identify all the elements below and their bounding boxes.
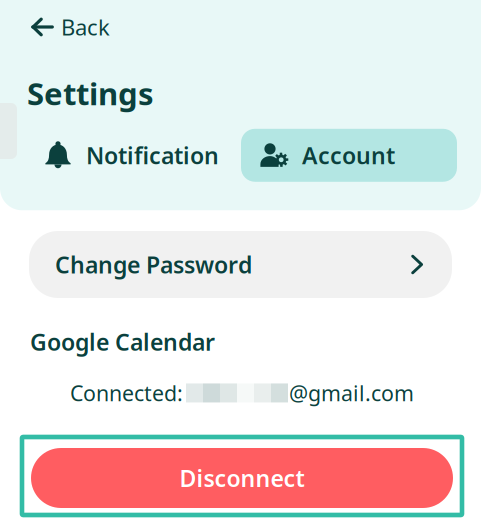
staticText: Notification <box>86 140 219 171</box>
staticText: Google Calendar <box>30 326 215 357</box>
button[interactable]: Back <box>0 0 126 48</box>
button[interactable]: Account <box>241 129 457 182</box>
button[interactable]: Notification <box>22 128 241 182</box>
staticText: Disconnect <box>179 462 304 494</box>
staticText: @gmail.com <box>289 378 414 407</box>
staticText: Settings <box>27 72 154 114</box>
staticText: Connected: <box>70 378 183 407</box>
staticText: Change Password <box>55 249 252 280</box>
staticText: Back <box>61 12 110 42</box>
button[interactable]: Change Password <box>29 231 452 298</box>
button[interactable]: Disconnect <box>22 437 462 515</box>
staticText: Account <box>302 140 395 171</box>
